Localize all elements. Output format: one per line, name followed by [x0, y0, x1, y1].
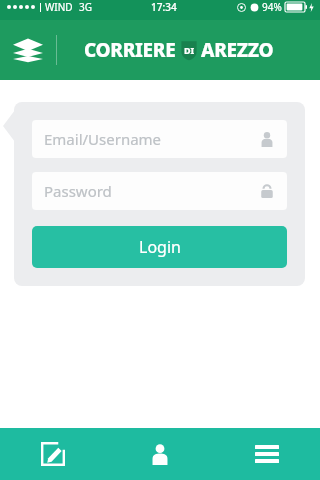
- staticText: CORRIERE: [84, 37, 176, 63]
- button[interactable]: Email/Username: [32, 120, 287, 158]
- button[interactable]: Menu: [0, 20, 56, 80]
- staticText: 94%: [262, 0, 282, 14]
- button[interactable]: Compose: [0, 428, 106, 480]
- staticText: AREZZO: [201, 37, 274, 63]
- staticText: Password: [44, 181, 112, 201]
- staticText: WIND: [45, 0, 73, 14]
- staticText: Email/Username: [44, 129, 162, 149]
- button[interactable]: Menu: [213, 428, 320, 480]
- button[interactable]: Login: [32, 226, 287, 268]
- staticText: 17:34: [151, 0, 177, 14]
- staticText: Login: [139, 236, 181, 258]
- staticText: DI: [184, 44, 195, 56]
- button[interactable]: Password: [32, 172, 287, 210]
- staticText: 3G: [79, 0, 92, 14]
- button[interactable]: Profile: [106, 428, 213, 480]
